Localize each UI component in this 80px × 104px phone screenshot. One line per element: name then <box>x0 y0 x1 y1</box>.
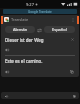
staticText: Español <box>52 27 67 32</box>
button[interactable]: Listen to source text <box>5 47 11 53</box>
staticText: Este es el camino. <box>5 58 43 64</box>
button[interactable]: Google Translate <box>3 9 77 14</box>
staticText: Translate <box>11 17 29 22</box>
other: Listen <box>4 94 8 98</box>
staticText: Dieser ist der Weg <box>5 37 44 43</box>
button[interactable]: Copy translation <box>69 69 75 75</box>
button[interactable]: Listen <box>1 92 79 99</box>
staticText: Google Translate <box>28 10 52 14</box>
other: Copy <box>72 94 76 98</box>
button[interactable]: Dieser ist der Weg <box>1 35 79 44</box>
button[interactable]: Español <box>44 26 75 33</box>
staticText: 9:27 <box>26 2 34 7</box>
button[interactable]: Clear text <box>70 37 75 42</box>
button[interactable]: Este es el camino. <box>1 56 79 66</box>
button[interactable]: Listen to translation <box>5 69 11 75</box>
button[interactable]: Swap languages <box>35 26 44 34</box>
button[interactable]: Alemán <box>5 26 35 33</box>
button[interactable]: Translate <box>1 15 79 24</box>
button[interactable]: More options <box>70 17 76 23</box>
staticText: Alemán <box>13 27 28 32</box>
